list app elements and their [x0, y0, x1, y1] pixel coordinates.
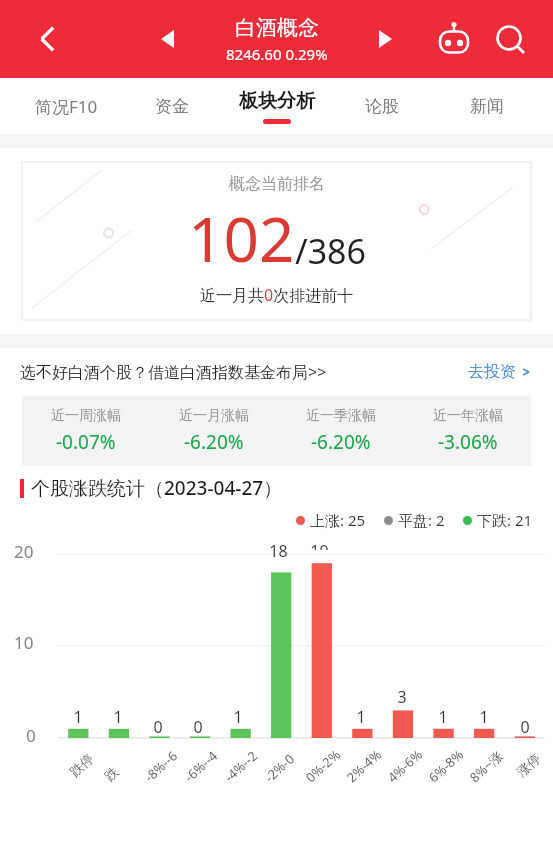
button[interactable]: 板块分析 — [224, 78, 329, 134]
staticText: 1 — [356, 706, 366, 728]
staticText: 近一月涨幅 — [179, 407, 249, 425]
staticText: 去投资 — [468, 362, 516, 382]
staticText: 跌停--8% — [101, 745, 141, 784]
staticText: -8%--6% — [140, 746, 182, 786]
staticText: 近一周涨幅 — [51, 407, 121, 425]
button[interactable]: Next sector — [367, 21, 403, 57]
staticText: 平盘: 2 — [398, 510, 445, 530]
staticText: 0 — [193, 716, 203, 738]
staticText: -6%--4% — [180, 746, 222, 786]
staticText: 1 — [73, 706, 83, 728]
staticText: 0 — [26, 724, 36, 747]
staticText: 近一年涨幅 — [433, 407, 503, 425]
staticText: 近一季涨幅 — [306, 407, 376, 425]
staticText: 1 — [233, 706, 243, 728]
staticText: 10 — [14, 631, 34, 654]
button[interactable]: Back — [26, 18, 68, 60]
staticText: 2%-4% — [343, 745, 385, 786]
staticText: -0.07% — [56, 429, 116, 455]
staticText: 1 — [438, 706, 448, 728]
staticText: 选不好白酒个股？借道白酒指数基金布局>> — [20, 361, 327, 383]
staticText: -6.20% — [184, 429, 244, 455]
button[interactable]: 资金 — [119, 78, 224, 134]
staticText: -2%-0% — [261, 745, 303, 786]
staticText: 1 — [113, 706, 123, 728]
staticText: 简况F10 — [35, 95, 98, 118]
staticText: -4%--2% — [220, 746, 262, 786]
staticText: 6%-8% — [425, 745, 467, 786]
button[interactable]: 简况F10 — [14, 78, 119, 134]
staticText: 3 — [397, 686, 407, 708]
staticText: 近一月共0次排进前十 — [200, 284, 354, 306]
staticText: 个股涨跌统计（2023-04-27） — [31, 475, 283, 501]
staticText: 0%-2% — [302, 745, 344, 786]
staticText: 论股 — [365, 96, 399, 117]
button[interactable]: 论股 — [329, 78, 434, 134]
staticText: 上涨: 25 — [310, 510, 366, 530]
staticText: -3.06% — [438, 429, 498, 455]
staticText: 4%-6% — [384, 745, 426, 786]
staticText: 0 — [153, 716, 163, 738]
staticText: 20 — [14, 540, 34, 563]
button[interactable]: 选不好白酒个股？借道白酒指数基金布局>> — [20, 348, 533, 396]
staticText: 板块分析 — [239, 89, 315, 113]
button[interactable]: Search — [489, 18, 531, 60]
staticText: 涨停 — [513, 750, 543, 779]
staticText: 18 — [269, 540, 288, 560]
button[interactable]: 新闻 — [434, 78, 539, 134]
staticText: 0 — [520, 716, 530, 738]
staticText: 资金 — [155, 96, 189, 117]
button[interactable]: Previous sector — [150, 21, 186, 57]
staticText: 8246.60 0.29% — [226, 44, 328, 64]
staticText: /386 — [295, 228, 366, 274]
staticText: 8%~涨停 — [466, 745, 508, 786]
staticText: 概念当前排名 — [229, 174, 325, 194]
staticText: 白酒概念 — [235, 15, 319, 41]
staticText: 102 — [188, 196, 295, 280]
staticText: 下跌: 21 — [477, 510, 533, 530]
staticText: -6.20% — [311, 429, 371, 455]
staticText: 1 — [479, 706, 489, 728]
button[interactable]: AI assistant — [433, 18, 475, 60]
staticText: 新闻 — [470, 96, 504, 117]
staticText: 19 — [310, 540, 329, 550]
staticText: 跌停 — [66, 750, 96, 779]
